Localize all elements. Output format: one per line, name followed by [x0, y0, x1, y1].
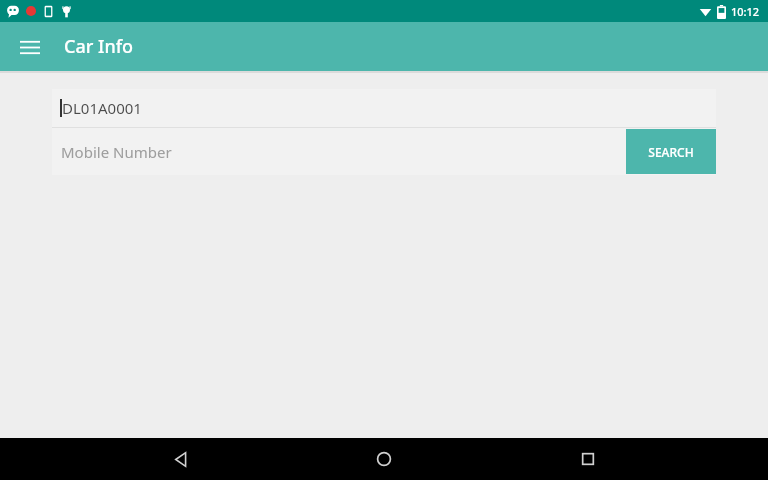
staticText: 10:12: [731, 4, 760, 19]
button[interactable]: Recent apps: [564, 438, 612, 480]
button[interactable]: DL01A0001: [52, 89, 716, 127]
button[interactable]: Open navigation menu: [10, 27, 50, 67]
button[interactable]: Back: [156, 438, 204, 480]
staticText: Car Info: [64, 34, 134, 59]
button[interactable]: Home: [360, 438, 408, 480]
staticText: Mobile Number: [61, 142, 172, 162]
button[interactable]: SEARCH: [626, 129, 716, 174]
staticText: DL01A0001: [62, 98, 142, 118]
staticText: SEARCH: [648, 144, 694, 160]
button[interactable]: Mobile Number: [52, 128, 626, 175]
